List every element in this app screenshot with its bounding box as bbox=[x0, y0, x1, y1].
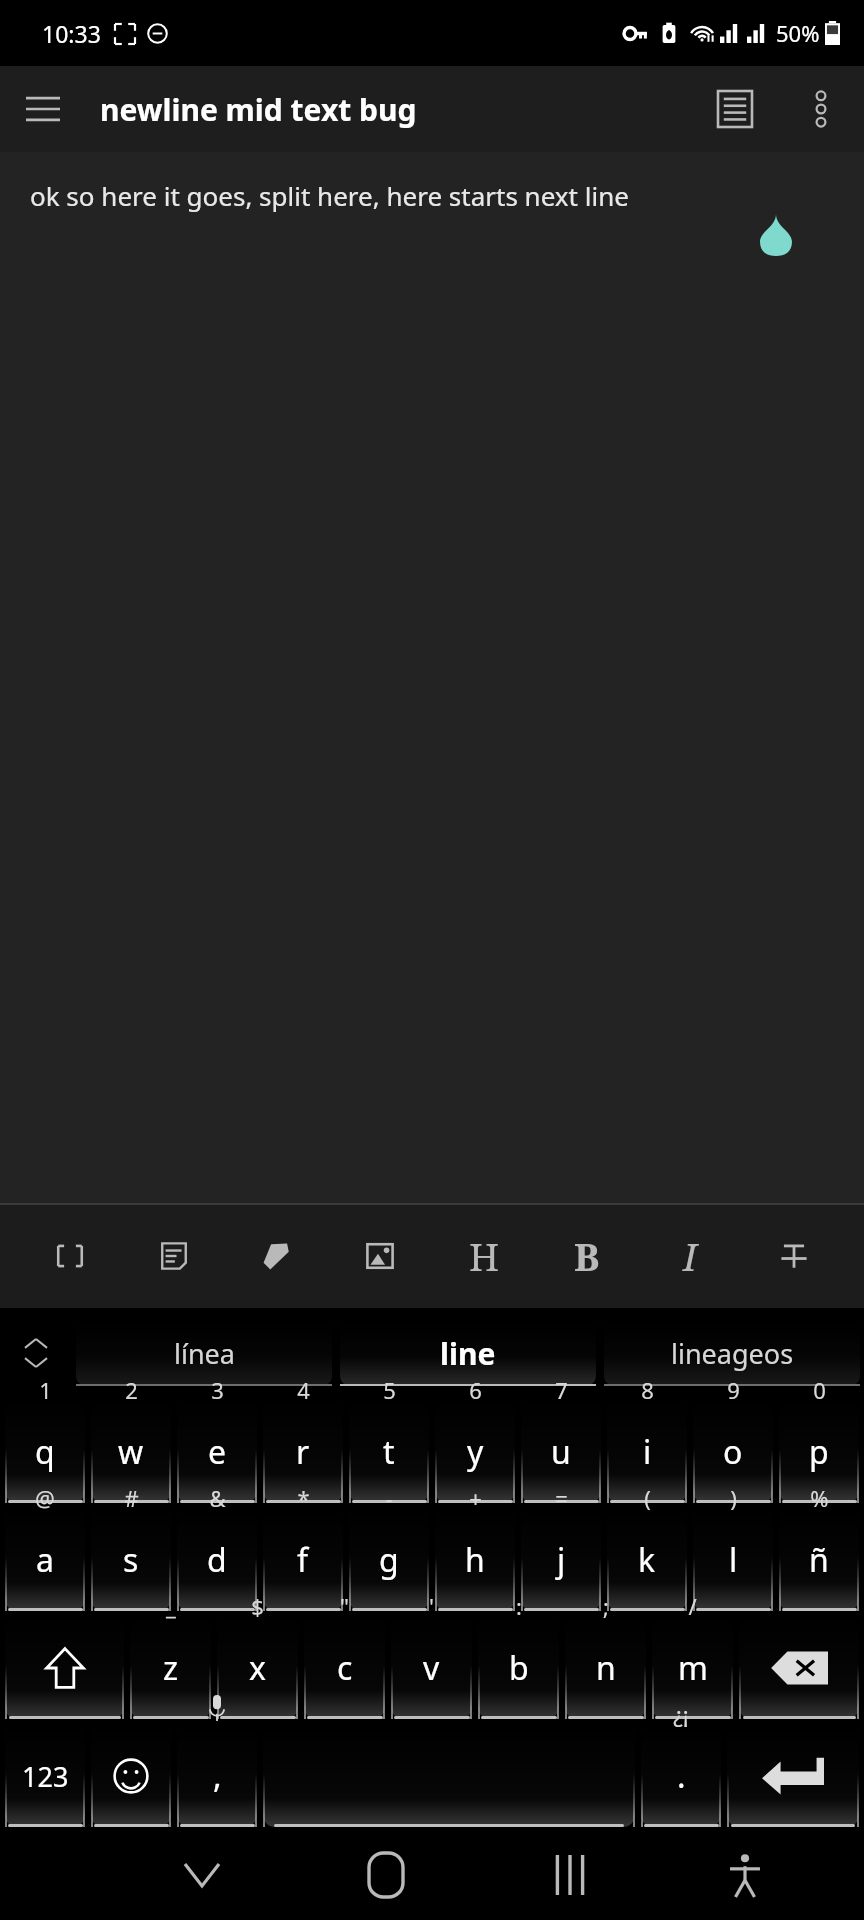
button[interactable]: 8 bbox=[607, 1401, 687, 1503]
staticText: q bbox=[35, 1430, 55, 1474]
button[interactable]: I bbox=[647, 1203, 733, 1308]
staticText: 6 bbox=[469, 1375, 482, 1405]
button[interactable]: " bbox=[304, 1617, 385, 1719]
staticText: f bbox=[297, 1538, 309, 1582]
staticText: z bbox=[163, 1646, 179, 1690]
button[interactable]: + bbox=[435, 1509, 515, 1611]
button[interactable]: & bbox=[177, 1509, 257, 1611]
button[interactable]: Emoji bbox=[91, 1725, 171, 1827]
staticText: B bbox=[574, 1230, 600, 1282]
staticText: w bbox=[118, 1430, 144, 1474]
button[interactable]: * bbox=[263, 1509, 343, 1611]
staticText: 1 bbox=[39, 1375, 52, 1405]
staticText: 123 bbox=[22, 1758, 69, 1795]
button[interactable]: @ bbox=[5, 1509, 85, 1611]
button[interactable]: Home bbox=[294, 1830, 478, 1920]
button[interactable]: 9 bbox=[693, 1401, 773, 1503]
staticText: H bbox=[469, 1230, 500, 1282]
button[interactable]: % bbox=[779, 1509, 859, 1611]
staticText: , bbox=[213, 1754, 222, 1798]
staticText: h bbox=[465, 1538, 485, 1582]
staticText: 8 bbox=[641, 1375, 654, 1405]
staticText: 9 bbox=[727, 1375, 740, 1405]
button[interactable]: Open navigation drawer bbox=[0, 66, 86, 152]
staticText: / bbox=[688, 1591, 697, 1621]
button[interactable]: ¿¡ bbox=[641, 1725, 721, 1827]
button[interactable]: Toggle preview bbox=[692, 66, 778, 152]
staticText: * bbox=[297, 1483, 310, 1513]
staticText: e bbox=[208, 1430, 227, 1474]
staticText: _ bbox=[166, 1591, 176, 1621]
staticText: 2 bbox=[125, 1375, 138, 1405]
staticText: c bbox=[337, 1646, 353, 1690]
button[interactable]: lineageos bbox=[604, 1308, 860, 1398]
staticText: k bbox=[638, 1538, 656, 1582]
staticText: ñ bbox=[809, 1538, 829, 1582]
button[interactable]: Tag bbox=[234, 1203, 320, 1308]
staticText: d bbox=[207, 1538, 227, 1582]
button[interactable]: 5 bbox=[349, 1401, 429, 1503]
staticText: ; bbox=[603, 1591, 609, 1621]
staticText: lineageos bbox=[671, 1335, 794, 1372]
button[interactable]: Note bbox=[131, 1203, 217, 1308]
staticText: j bbox=[557, 1538, 566, 1582]
button[interactable]: Image bbox=[337, 1203, 423, 1308]
staticText: - bbox=[385, 1483, 393, 1513]
button[interactable]: $ bbox=[217, 1617, 298, 1719]
button[interactable]: 4 bbox=[263, 1401, 343, 1503]
button[interactable]: line bbox=[340, 1308, 596, 1398]
button[interactable]: línea bbox=[76, 1308, 332, 1398]
staticText: line bbox=[440, 1333, 496, 1374]
button[interactable]: Backspace bbox=[739, 1617, 859, 1719]
button[interactable]: Accessibility bbox=[662, 1830, 827, 1920]
staticText: @ bbox=[35, 1483, 55, 1513]
button[interactable]: More options bbox=[778, 66, 864, 152]
button[interactable]: = bbox=[521, 1509, 601, 1611]
button[interactable]: 6 bbox=[435, 1401, 515, 1503]
button[interactable]: Space bbox=[263, 1725, 635, 1827]
button[interactable]: 3 bbox=[177, 1401, 257, 1503]
staticText: v bbox=[423, 1646, 440, 1690]
staticText: n bbox=[596, 1646, 616, 1690]
button[interactable]: / bbox=[652, 1617, 733, 1719]
button[interactable]: 123 bbox=[5, 1725, 85, 1827]
staticText: u bbox=[551, 1430, 571, 1474]
staticText: & bbox=[209, 1483, 226, 1513]
button[interactable]: Enter bbox=[727, 1725, 859, 1827]
button[interactable]: B bbox=[544, 1203, 630, 1308]
button[interactable]: ' bbox=[391, 1617, 472, 1719]
staticText: i bbox=[643, 1430, 652, 1474]
button[interactable]: H bbox=[441, 1203, 527, 1308]
button[interactable]: Expand suggestions bbox=[0, 1308, 72, 1398]
button[interactable]: 1 bbox=[5, 1401, 85, 1503]
button[interactable]: ; bbox=[565, 1617, 646, 1719]
button[interactable]: # bbox=[91, 1509, 171, 1611]
button[interactable]: _ bbox=[130, 1617, 211, 1719]
button[interactable]: ) bbox=[693, 1509, 773, 1611]
button[interactable]: 7 bbox=[521, 1401, 601, 1503]
button[interactable]: 0 bbox=[779, 1401, 859, 1503]
staticText: m bbox=[678, 1646, 708, 1690]
staticText: p bbox=[809, 1430, 829, 1474]
staticText: 50% bbox=[776, 18, 820, 48]
staticText: 4 bbox=[297, 1375, 310, 1405]
staticText: a bbox=[36, 1538, 54, 1582]
staticText: $ bbox=[251, 1591, 264, 1621]
button[interactable]: Brackets bbox=[27, 1203, 113, 1308]
button[interactable]: - bbox=[349, 1509, 429, 1611]
staticText: ' bbox=[429, 1591, 434, 1621]
staticText: línea bbox=[174, 1335, 235, 1372]
button[interactable]: Hide keyboard bbox=[110, 1830, 294, 1920]
button[interactable]: Recent apps bbox=[478, 1830, 662, 1920]
staticText: 0 bbox=[813, 1375, 826, 1405]
staticText: y bbox=[467, 1430, 484, 1474]
button[interactable]: Shift bbox=[5, 1617, 124, 1719]
button[interactable]: , bbox=[177, 1725, 257, 1827]
button[interactable]: : bbox=[478, 1617, 559, 1719]
staticText: + bbox=[469, 1483, 482, 1513]
button[interactable]: Strikethrough bbox=[751, 1203, 837, 1308]
button[interactable]: 2 bbox=[91, 1401, 171, 1503]
staticText: s bbox=[123, 1538, 139, 1582]
button[interactable]: ( bbox=[607, 1509, 687, 1611]
staticText: 5 bbox=[383, 1375, 396, 1405]
